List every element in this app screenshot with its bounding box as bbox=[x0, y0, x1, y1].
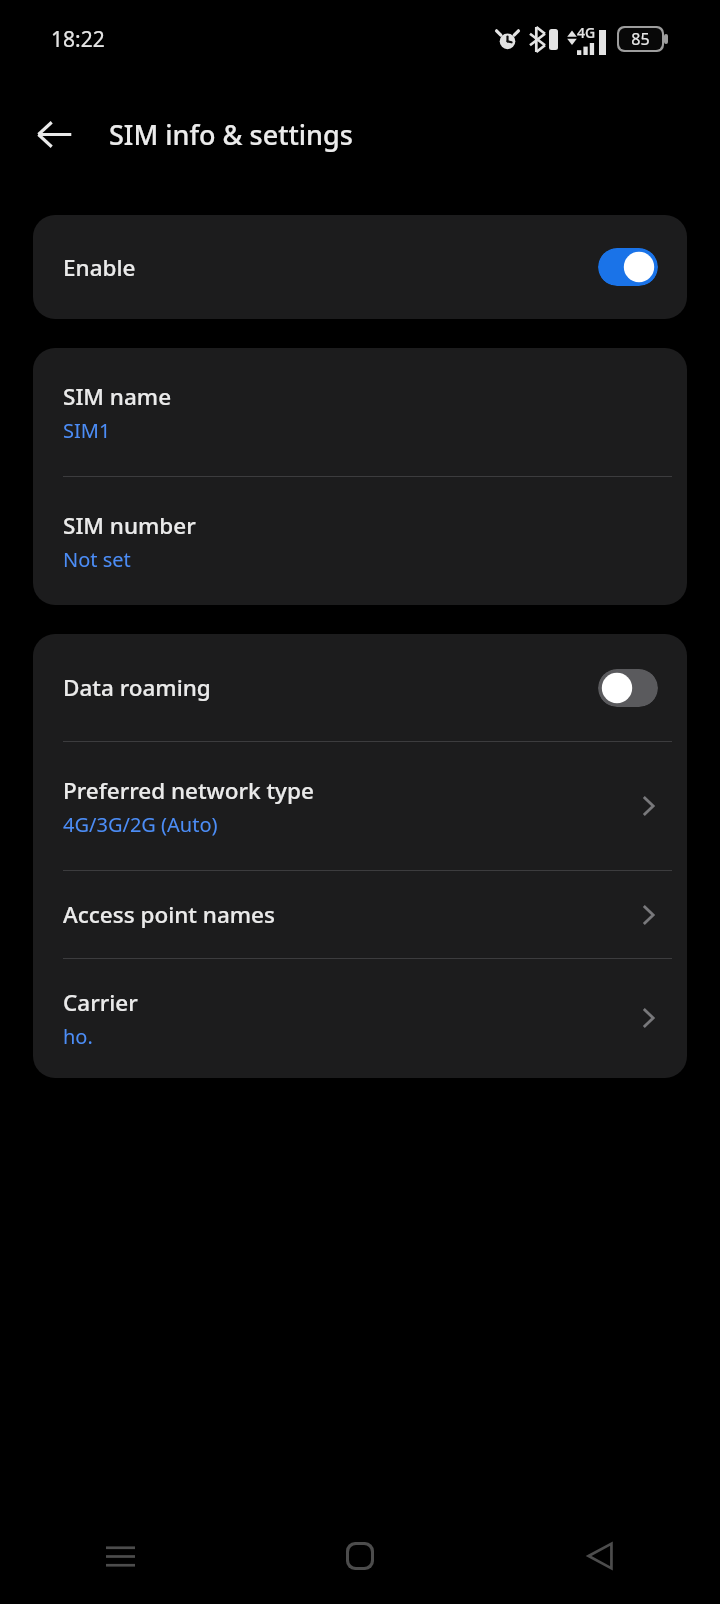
staticText: Not set bbox=[63, 546, 131, 573]
staticText: Preferred network type bbox=[63, 775, 314, 806]
staticText: 4G/3G/2G (Auto) bbox=[63, 811, 218, 838]
button[interactable]: SIM name bbox=[33, 348, 687, 476]
button[interactable]: Switch off bbox=[598, 669, 658, 707]
button[interactable]: Switch on bbox=[598, 248, 658, 286]
button[interactable]: Carrier bbox=[33, 959, 687, 1077]
button[interactable]: Access point names bbox=[33, 871, 687, 958]
staticText: 4G bbox=[577, 23, 596, 42]
button[interactable]: Recent apps bbox=[0, 1508, 240, 1604]
staticText: Access point names bbox=[63, 899, 635, 930]
staticText: ho. bbox=[63, 1023, 93, 1050]
button[interactable]: Home bbox=[240, 1508, 480, 1604]
staticText: Enable bbox=[63, 252, 136, 283]
staticText: SIM1 bbox=[63, 417, 111, 444]
button[interactable]: Data roaming bbox=[33, 634, 687, 741]
staticText: Carrier bbox=[63, 987, 138, 1018]
button[interactable]: Back bbox=[22, 102, 86, 166]
button[interactable]: SIM number bbox=[33, 477, 687, 605]
staticText: 18:22 bbox=[51, 25, 105, 54]
staticText: Data roaming bbox=[63, 672, 211, 703]
button[interactable]: Preferred network type bbox=[33, 742, 687, 870]
staticText: SIM name bbox=[63, 381, 172, 412]
staticText: SIM number bbox=[63, 510, 196, 541]
button[interactable]: Enable bbox=[33, 215, 687, 319]
button[interactable]: Back bbox=[480, 1508, 720, 1604]
staticText: SIM info & settings bbox=[109, 116, 353, 153]
staticText: 85 bbox=[631, 28, 650, 50]
